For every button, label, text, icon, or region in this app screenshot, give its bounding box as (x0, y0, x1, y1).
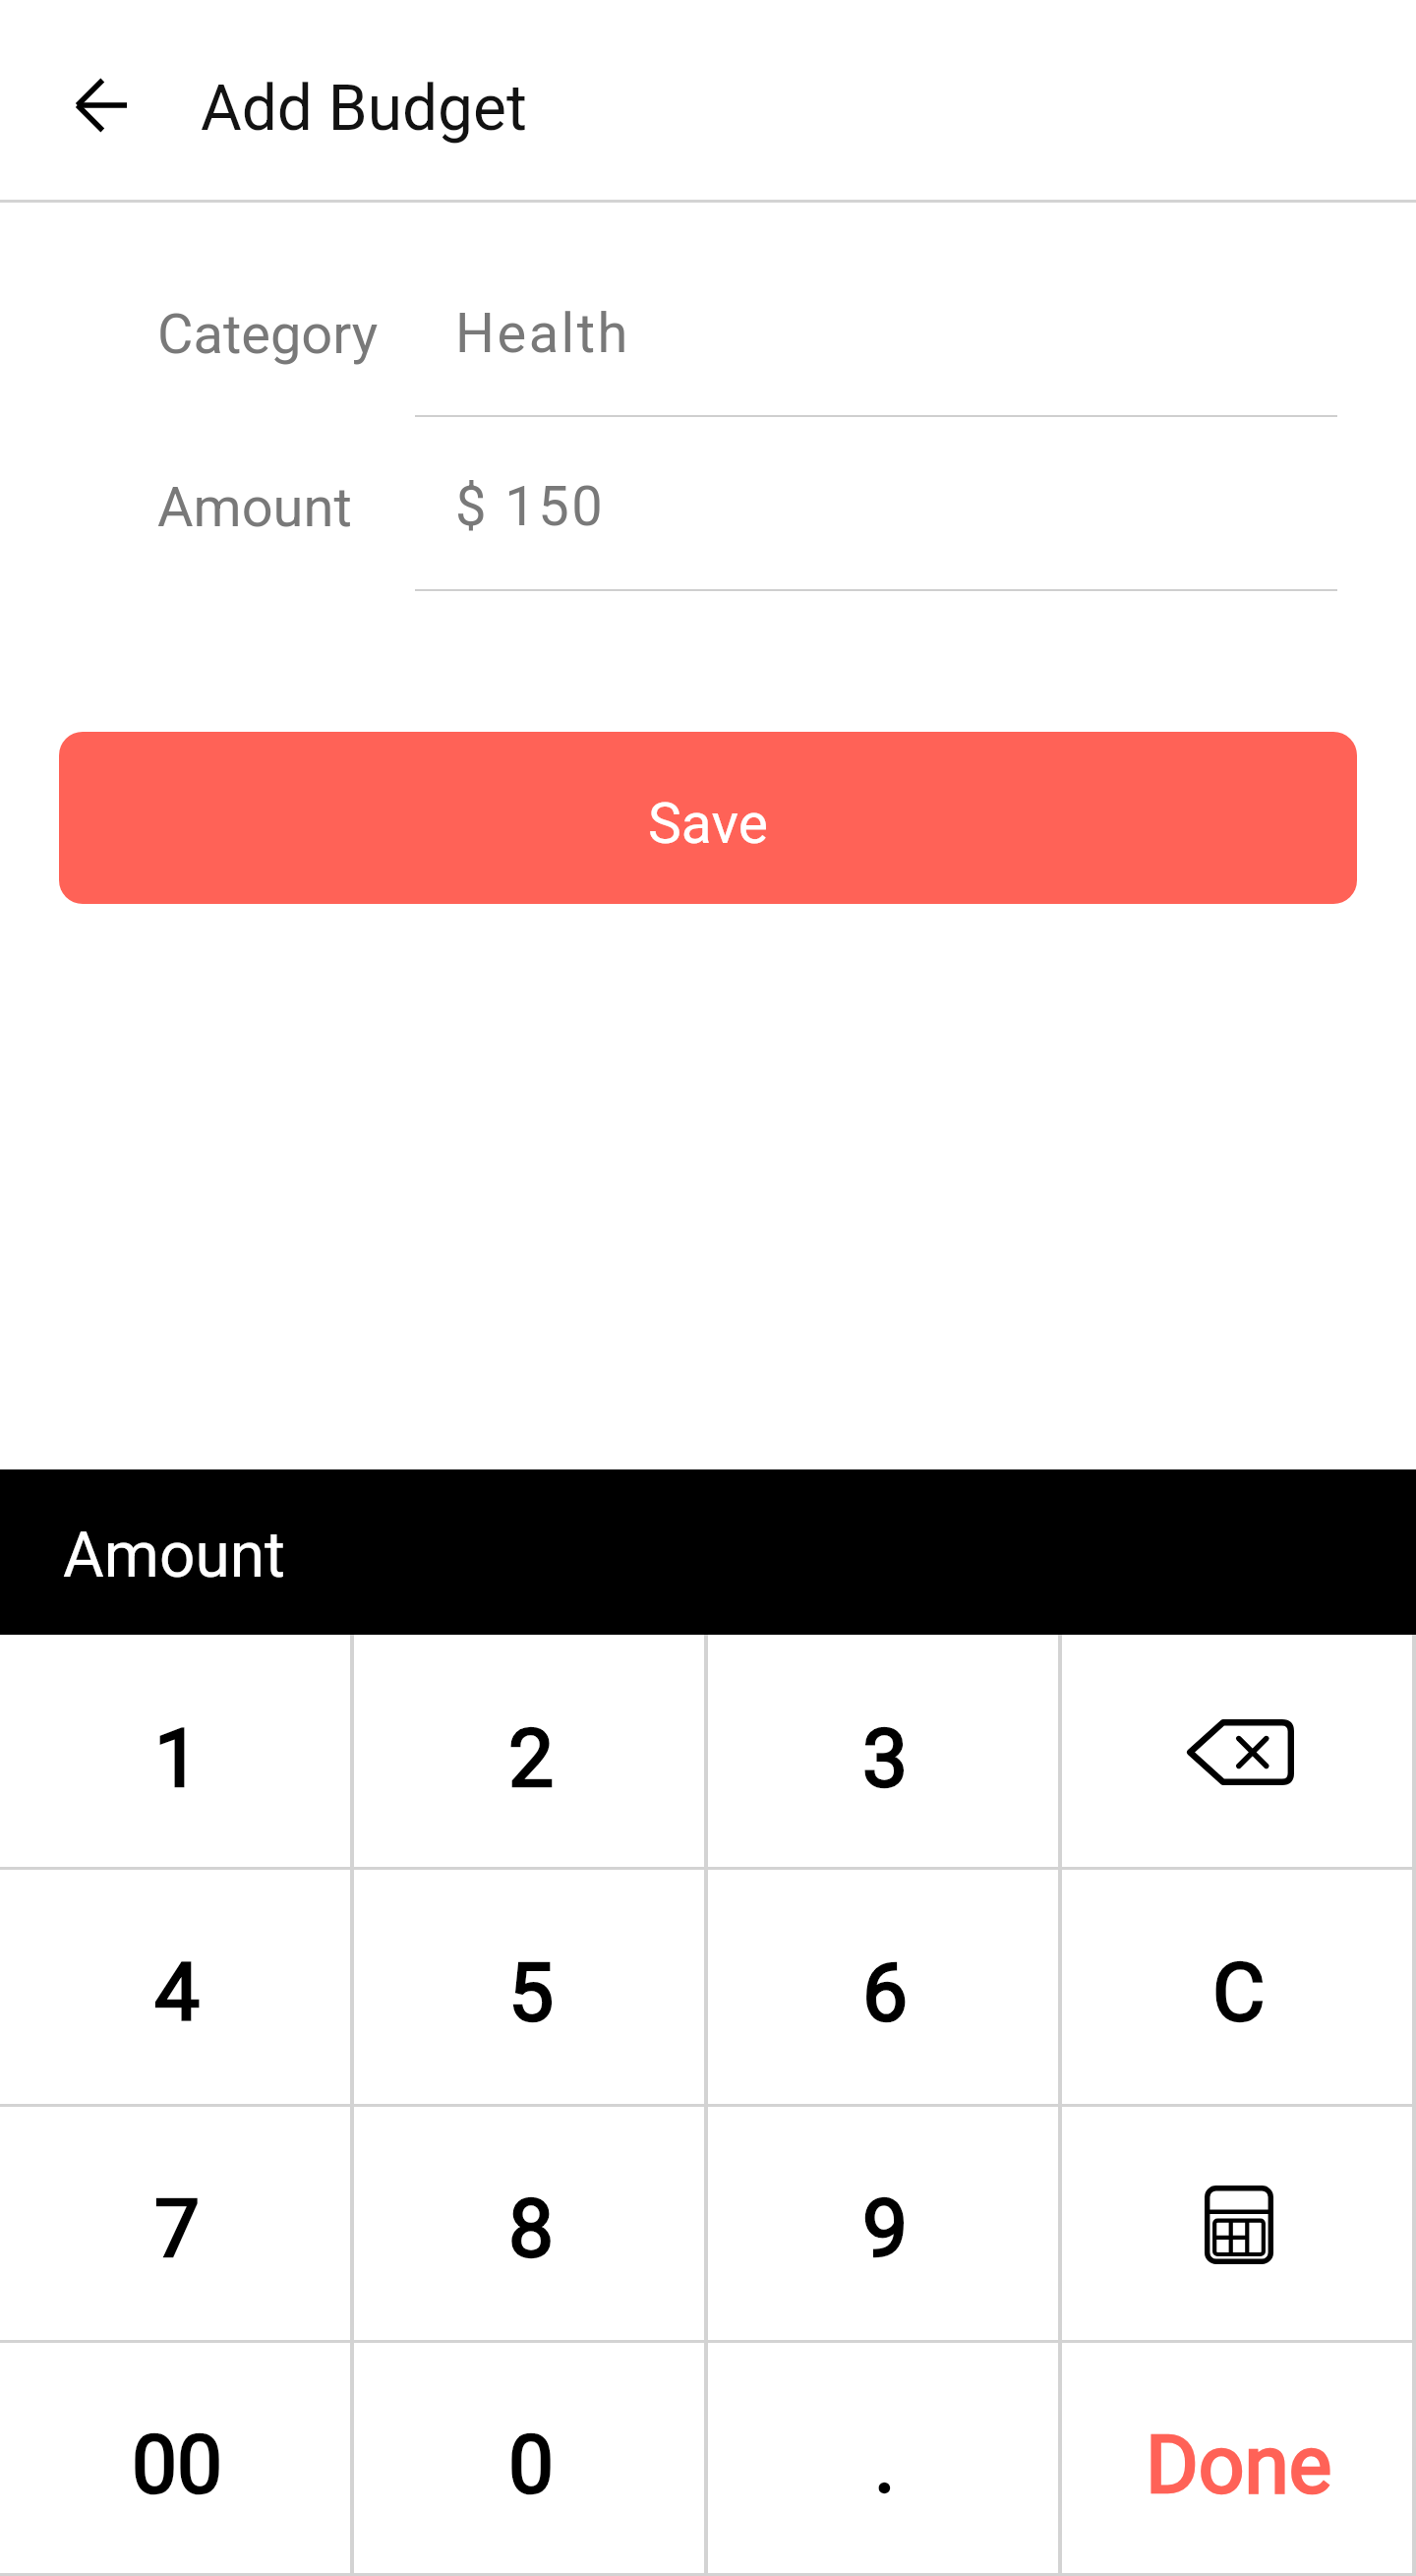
staticText: 00 (132, 2418, 223, 2512)
other: Backspace (1185, 1719, 1294, 1785)
staticText: Amount (157, 475, 352, 540)
button[interactable]: Calculator (1062, 2107, 1416, 2340)
staticText: Category (157, 302, 379, 367)
staticText: 3 (862, 1711, 909, 1806)
button[interactable]: Back (29, 34, 171, 176)
button[interactable]: 5 (354, 1870, 708, 2104)
button[interactable]: Done (1062, 2343, 1416, 2573)
button[interactable]: . (708, 2343, 1062, 2573)
staticText: C (1212, 1946, 1266, 2040)
button[interactable]: 00 (0, 2343, 354, 2573)
button[interactable]: Backspace (1062, 1635, 1416, 1867)
button[interactable]: 8 (354, 2107, 708, 2340)
staticText: Amount (63, 1519, 285, 1592)
button[interactable]: 4 (0, 1870, 354, 2104)
staticText: Add Budget (201, 72, 527, 146)
button[interactable]: C (1062, 1870, 1416, 2104)
button[interactable]: 2 (354, 1635, 708, 1867)
staticText: 1 (154, 1711, 201, 1806)
button[interactable]: 0 (354, 2343, 708, 2573)
staticText: . (874, 2418, 896, 2512)
staticText: Health (455, 301, 630, 366)
staticText: 8 (508, 2182, 555, 2276)
other: Calculator (1205, 2186, 1273, 2264)
button[interactable]: Save (59, 732, 1357, 904)
staticText: 5 (508, 1946, 555, 2040)
button[interactable]: 9 (708, 2107, 1062, 2340)
staticText: Save (648, 791, 768, 857)
staticText: $ 150 (455, 474, 606, 539)
button[interactable]: 3 (708, 1635, 1062, 1867)
button[interactable]: 1 (0, 1635, 354, 1867)
staticText: Done (1146, 2418, 1332, 2512)
staticText: 2 (508, 1711, 555, 1806)
button[interactable]: 6 (708, 1870, 1062, 2104)
staticText: 9 (862, 2182, 909, 2276)
staticText: 4 (154, 1946, 201, 2040)
button[interactable]: 7 (0, 2107, 354, 2340)
staticText: 7 (154, 2182, 201, 2276)
staticText: 6 (862, 1946, 909, 2040)
staticText: 0 (508, 2418, 555, 2512)
